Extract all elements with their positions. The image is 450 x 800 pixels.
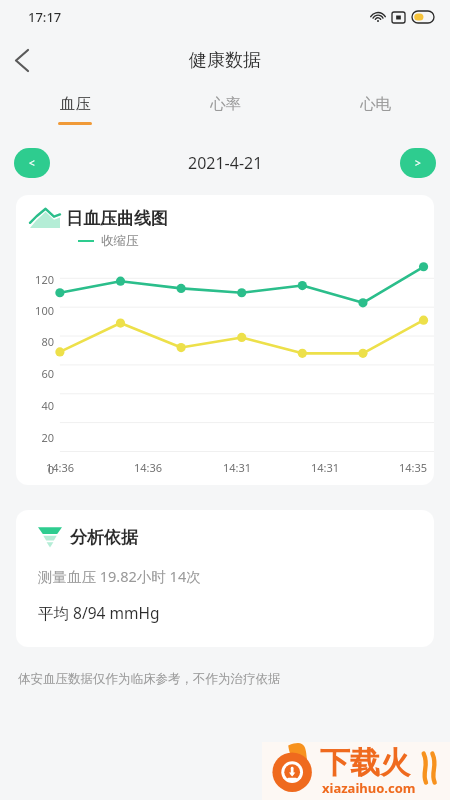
staticText: 2021-4-21 (188, 152, 263, 174)
button[interactable]: 心率 (150, 86, 300, 131)
staticText: 心电 (360, 94, 391, 114)
button[interactable]: 血压 (0, 86, 150, 131)
button[interactable]: Next day (400, 148, 436, 178)
staticText: 收缩压 (101, 233, 139, 249)
button[interactable]: 心电 (300, 86, 450, 131)
staticText: 17:17 (28, 8, 62, 26)
staticText: 分析依据 (70, 527, 138, 548)
staticText: 平均 8/94 mmHg (38, 602, 160, 623)
staticText: 心率 (210, 94, 241, 114)
staticText: 14:35 (399, 460, 428, 475)
staticText: 14:36 (134, 460, 163, 475)
staticText: 14:31 (223, 460, 252, 475)
staticText: 体安血压数据仅作为临床参考，不作为治疗依据 (18, 671, 281, 687)
staticText: 血压 (60, 94, 91, 114)
button[interactable]: Back (0, 38, 44, 82)
staticText: 健康数据 (189, 49, 261, 72)
staticText: > (415, 156, 421, 170)
staticText: xiazaihuo.com (322, 779, 416, 797)
staticText: < (29, 156, 35, 170)
staticText: 下载火 (320, 744, 410, 782)
staticText: 14:36 (46, 460, 75, 475)
staticText: 测量血压 19.82小时 14次 (38, 566, 201, 586)
staticText: 120 (18, 272, 54, 287)
staticText: 60 (18, 366, 54, 381)
staticText: 0 (18, 462, 54, 477)
staticText: 14:31 (311, 460, 340, 475)
staticText: 100 (18, 303, 54, 318)
staticText: 80 (18, 334, 54, 349)
button[interactable]: Previous day (14, 148, 50, 178)
staticText: 40 (18, 398, 54, 413)
staticText: 20 (18, 430, 54, 445)
staticText: 日血压曲线图 (66, 208, 168, 229)
